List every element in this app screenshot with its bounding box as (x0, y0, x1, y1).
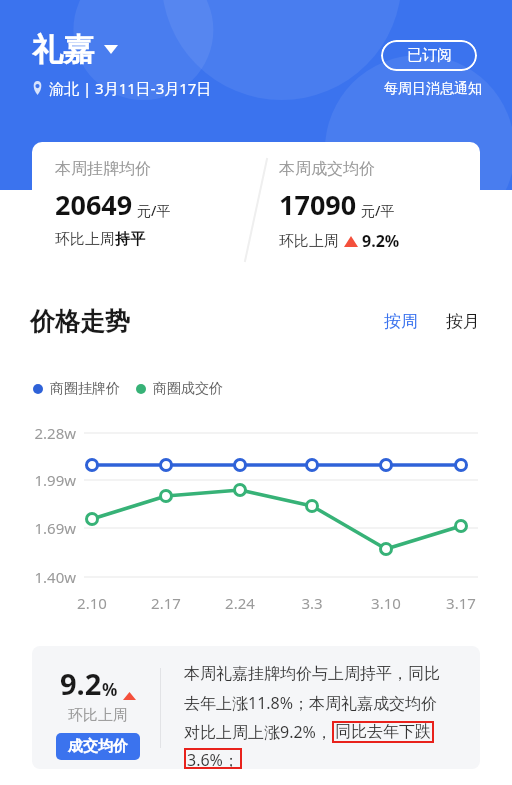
staticText: 本周成交均价 (279, 159, 375, 179)
staticText: 环比上周 (279, 232, 339, 251)
staticText: 17090 (279, 186, 357, 223)
staticText: % (102, 678, 118, 701)
staticText: 商圈成交价 (153, 380, 223, 398)
staticText: 环比上周 (55, 230, 115, 249)
staticText: 20649 (55, 186, 133, 223)
staticText: 1.69w (22, 518, 76, 538)
button[interactable]: 本周挂牌均价 (32, 142, 480, 278)
staticText: 去年上涨11.8%；本周礼嘉成交均价 (184, 692, 438, 714)
staticText: 商圈挂牌价 (50, 380, 120, 398)
staticText: 成交均价 (68, 737, 128, 756)
staticText: 9.2 (60, 664, 102, 703)
staticText: 按周 (384, 311, 418, 332)
staticText: 2.10 (72, 593, 112, 613)
button[interactable]: 礼嘉 (32, 30, 118, 69)
button[interactable]: 按周 (380, 307, 422, 336)
staticText: 元/平 (361, 201, 395, 220)
staticText: 3.6%； (187, 749, 239, 768)
button[interactable]: 9.2 (32, 646, 480, 769)
staticText: 2.24 (220, 593, 260, 613)
staticText: 本周礼嘉挂牌均价与上周持平，同比 (184, 664, 440, 684)
staticText: 持平 (115, 230, 145, 249)
staticText: 按月 (446, 311, 480, 332)
staticText: 3.17 (441, 593, 481, 613)
button[interactable]: 成交均价 (56, 733, 140, 760)
staticText: 1.99w (22, 470, 76, 490)
staticText: 环比上周 (68, 706, 128, 725)
staticText: 本周挂牌均价 (55, 159, 151, 179)
staticText: 1.40w (22, 567, 76, 587)
staticText: 3.10 (366, 593, 406, 613)
staticText: 同比去年下跌 (335, 722, 431, 742)
staticText: 渝北 | 3月11日-3月17日 (49, 78, 212, 98)
staticText: 已订阅 (407, 46, 452, 65)
staticText: 礼嘉 (32, 30, 94, 69)
staticText: 3.3 (292, 593, 332, 613)
staticText: 每周日消息通知 (384, 80, 482, 98)
button[interactable]: 已订阅 (381, 40, 477, 71)
staticText: 对比上周上涨9.2%， (184, 721, 332, 743)
staticText: 元/平 (137, 201, 171, 220)
button[interactable]: 按月 (442, 307, 484, 336)
staticText: 2.17 (146, 593, 186, 613)
staticText: 价格走势 (30, 306, 130, 337)
staticText: 2.28w (22, 423, 76, 443)
staticText: 9.2% (362, 230, 400, 252)
